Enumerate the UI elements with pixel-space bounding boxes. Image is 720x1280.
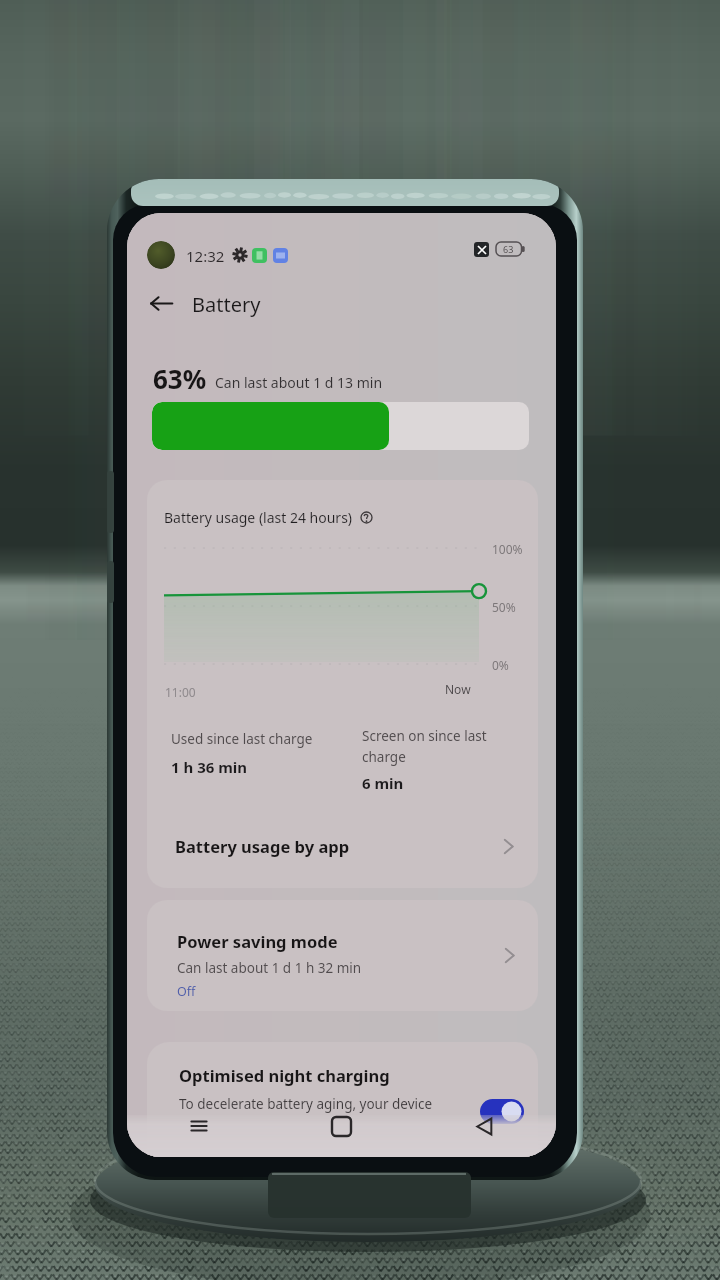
staticText: Used since last charge [171, 730, 313, 748]
staticText: Power saving mode [177, 930, 338, 952]
staticText: 12:32 [186, 246, 225, 266]
staticText: 63% [153, 361, 207, 396]
staticText: To decelerate battery aging, your device [179, 1095, 433, 1113]
button[interactable]: Power saving mode [147, 900, 538, 1011]
staticText: 0% [492, 657, 509, 673]
staticText: Battery [192, 291, 261, 318]
staticText: 6 min [362, 773, 404, 793]
staticText: Battery usage (last 24 hours) [164, 508, 353, 527]
button[interactable]: Back [413, 1101, 556, 1151]
staticText: 1 h 36 min [171, 757, 248, 777]
button[interactable]: Back [141, 283, 182, 324]
staticText: Off [177, 983, 196, 1000]
staticText: Optimised night charging [179, 1064, 390, 1086]
button[interactable]: Battery usage by app [147, 818, 538, 874]
button[interactable]: Recent apps [127, 1101, 270, 1151]
staticText: 100% [492, 541, 523, 557]
staticText: 50% [492, 599, 516, 615]
staticText: Can last about 1 d 13 min [215, 373, 383, 392]
staticText: 63 [503, 243, 514, 255]
staticText: Screen on since last charge [362, 727, 490, 766]
staticText: Now [445, 681, 471, 697]
staticText: Can last about 1 d 1 h 32 min [177, 959, 362, 977]
staticText: 11:00 [165, 684, 196, 700]
button[interactable]: Home [270, 1101, 413, 1151]
button[interactable]: Toggle optimised night charging [480, 1099, 524, 1124]
staticText: Battery usage by app [175, 835, 350, 857]
